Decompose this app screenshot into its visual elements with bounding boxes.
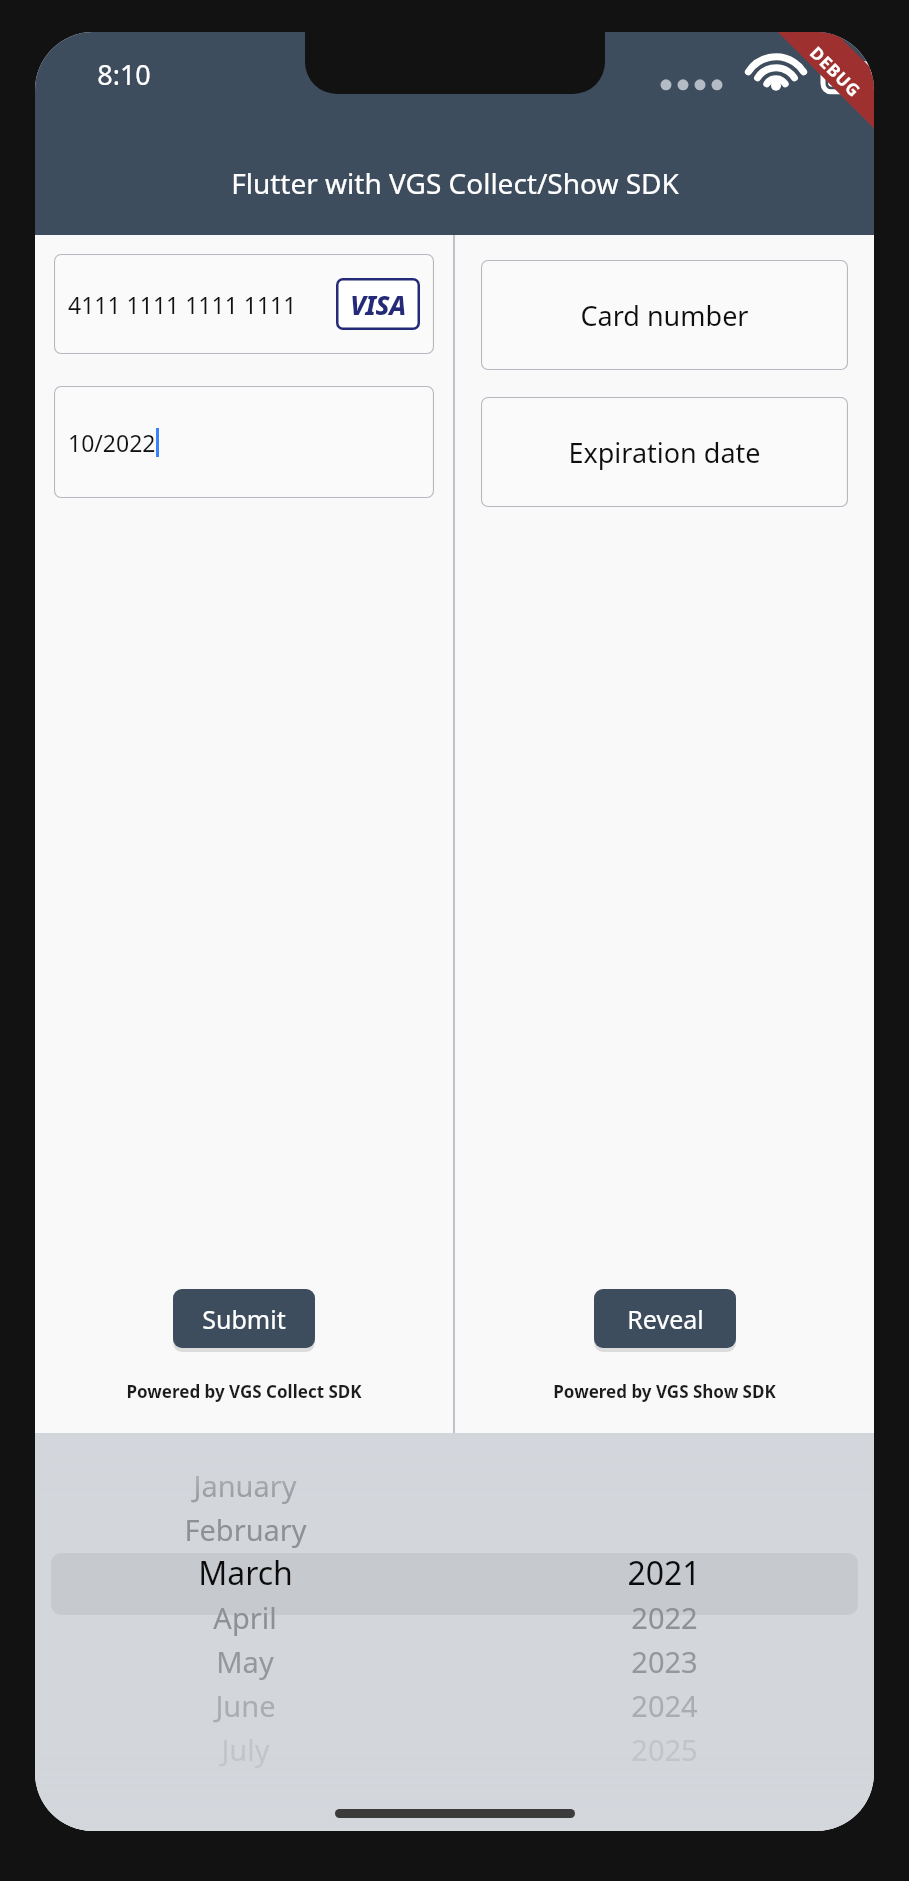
staticText: April — [213, 1598, 277, 1637]
button[interactable]: Submit — [173, 1289, 315, 1348]
staticText: Expiration date — [568, 434, 761, 471]
staticText: Powered by VGS Collect SDK — [126, 1380, 362, 1403]
button[interactable]: February — [35, 1507, 455, 1551]
staticText: July — [221, 1730, 270, 1769]
button[interactable]: June — [35, 1683, 455, 1727]
button[interactable]: 2021 — [454, 1551, 874, 1595]
staticText: VISA — [350, 287, 406, 322]
staticText: May — [216, 1642, 274, 1681]
staticText: 8:10 — [97, 56, 151, 93]
button[interactable]: 2023 — [454, 1639, 874, 1683]
button[interactable]: Expiration date — [481, 397, 848, 507]
staticText: January — [193, 1466, 297, 1505]
staticText: June — [215, 1686, 276, 1725]
staticText: Card number — [580, 297, 749, 334]
staticText: Powered by VGS Show SDK — [553, 1380, 776, 1403]
staticText: Flutter with VGS Collect/Show SDK — [231, 164, 679, 202]
staticText: 2025 — [631, 1730, 698, 1769]
button[interactable]: March — [35, 1551, 455, 1595]
staticText: Submit — [202, 1302, 286, 1336]
button[interactable]: 10/2022 — [54, 386, 434, 498]
button[interactable]: 2022 — [454, 1595, 874, 1639]
staticText: 2021 — [627, 1551, 701, 1595]
staticText: 4111 1111 1111 1111 — [68, 289, 336, 320]
button[interactable]: 2024 — [454, 1683, 874, 1727]
button[interactable]: January — [35, 1463, 455, 1507]
button[interactable]: Card number — [481, 260, 848, 370]
staticText: 2023 — [631, 1642, 698, 1681]
button[interactable]: May — [35, 1639, 455, 1683]
staticText: DEBUG — [805, 41, 866, 102]
staticText: 2024 — [631, 1686, 698, 1725]
staticText: Reveal — [627, 1302, 704, 1336]
staticText: February — [184, 1510, 307, 1549]
button[interactable]: Reveal — [594, 1289, 736, 1348]
button[interactable]: 4111 1111 1111 1111 — [54, 254, 434, 354]
staticText: 10/2022 — [68, 427, 156, 458]
staticText: 2022 — [631, 1598, 698, 1637]
other: Visa card brand — [336, 278, 420, 330]
button[interactable]: April — [35, 1595, 455, 1639]
staticText: March — [198, 1551, 293, 1595]
